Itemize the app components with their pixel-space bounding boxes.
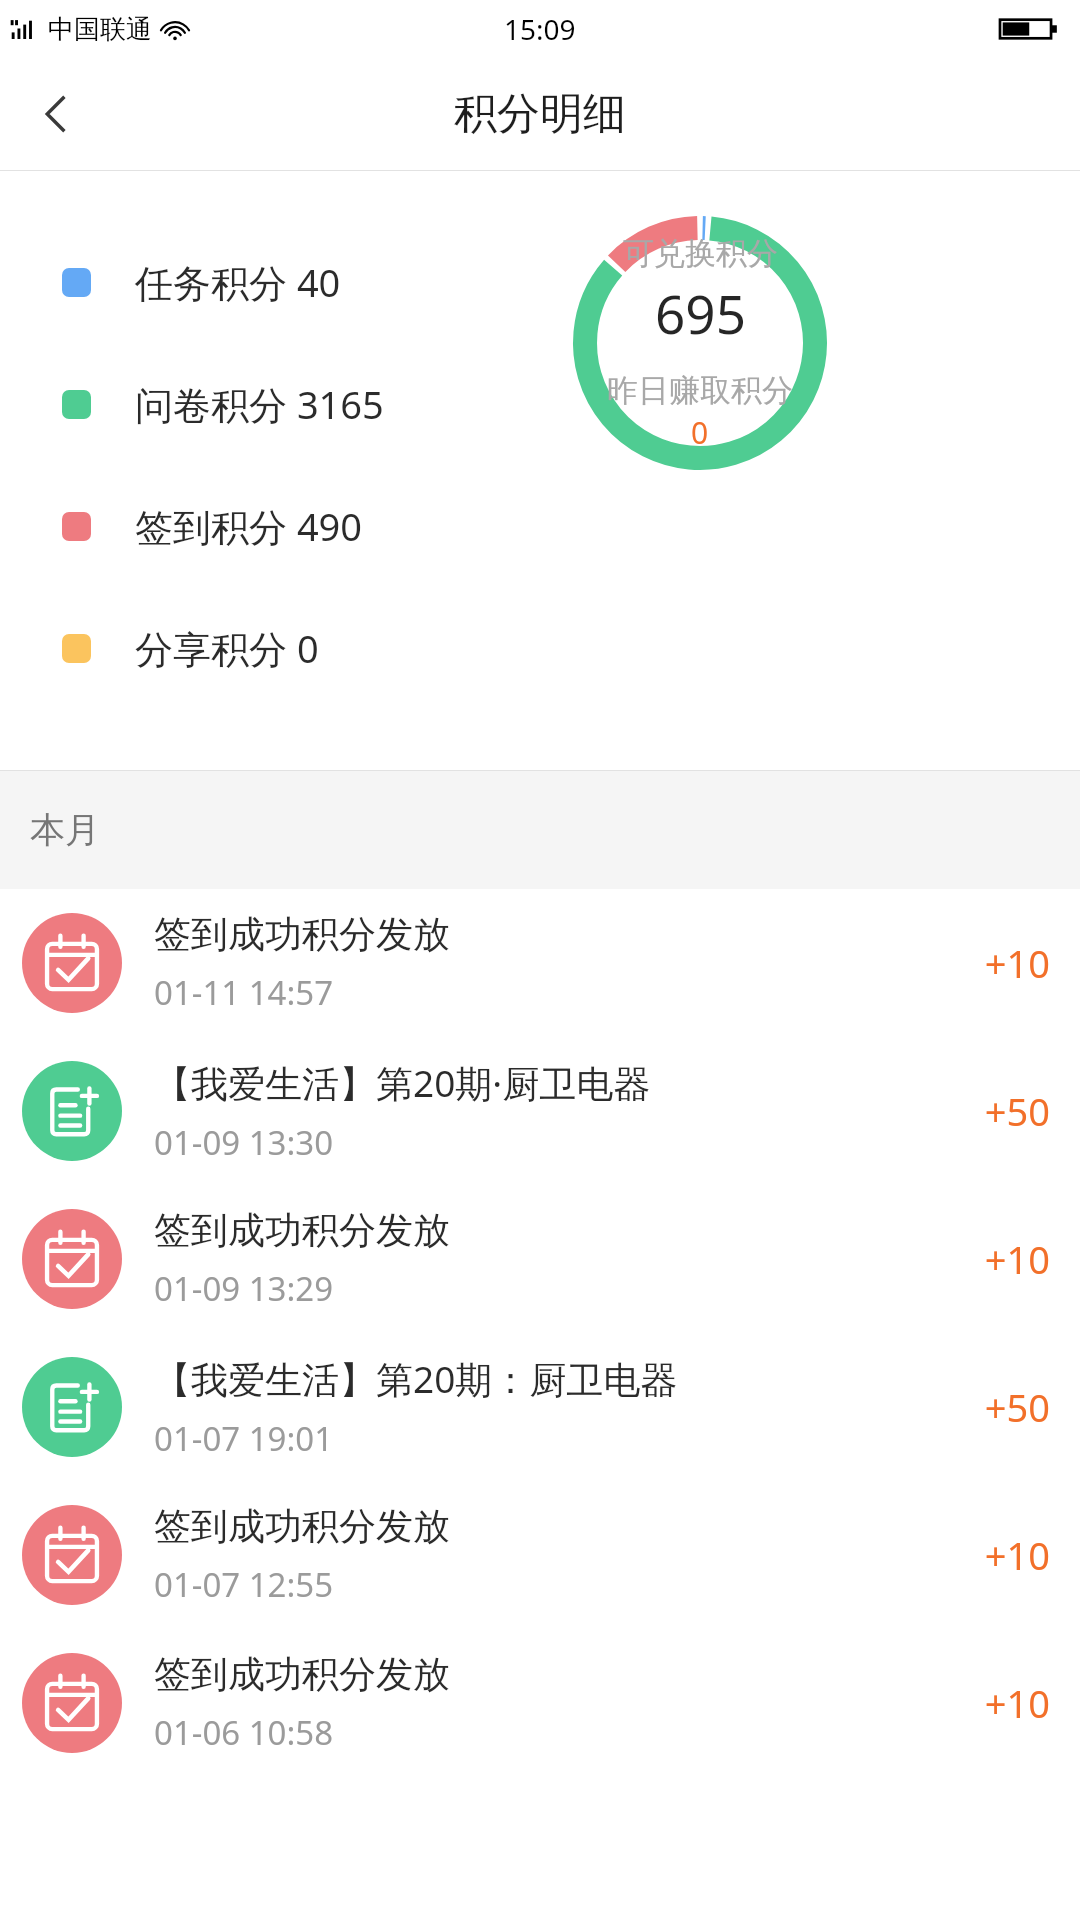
staticText: +50 bbox=[984, 1085, 1050, 1137]
staticText: 01-06 10:58 bbox=[154, 1710, 334, 1755]
staticText: 签到成功积分发放 bbox=[154, 1651, 450, 1698]
staticText: 签到积分 490 bbox=[135, 500, 363, 552]
staticText: 本月 bbox=[30, 808, 100, 852]
staticText: 可兑换积分 bbox=[623, 234, 778, 273]
staticText: 01-09 13:29 bbox=[154, 1266, 334, 1311]
button[interactable]: 签到成功积分发放 bbox=[0, 1629, 1080, 1777]
staticText: +10 bbox=[984, 1677, 1050, 1729]
button[interactable]: 任务积分 40 bbox=[62, 256, 341, 308]
staticText: 01-11 14:57 bbox=[154, 970, 334, 1015]
staticText: 任务积分 40 bbox=[135, 256, 341, 308]
staticText: 01-07 19:01 bbox=[154, 1416, 334, 1461]
staticText: 问卷积分 3165 bbox=[135, 378, 384, 430]
staticText: 签到成功积分发放 bbox=[154, 1207, 450, 1254]
button[interactable]: 签到成功积分发放 bbox=[0, 1481, 1080, 1629]
button[interactable]: 签到成功积分发放 bbox=[0, 1185, 1080, 1333]
staticText: 0 bbox=[691, 412, 709, 453]
button[interactable]: Back bbox=[0, 58, 112, 170]
staticText: 01-07 12:55 bbox=[154, 1562, 334, 1607]
button[interactable]: 【我爱生活】第20期·厨卫电器 bbox=[0, 1037, 1080, 1185]
staticText: 01-09 13:30 bbox=[154, 1120, 334, 1165]
button[interactable]: 【我爱生活】第20期：厨卫电器 bbox=[0, 1333, 1080, 1481]
staticText: 【我爱生活】第20期·厨卫电器 bbox=[154, 1057, 651, 1108]
staticText: 【我爱生活】第20期：厨卫电器 bbox=[154, 1353, 678, 1404]
button[interactable]: 问卷积分 3165 bbox=[62, 378, 384, 430]
staticText: 昨日赚取积分 bbox=[607, 371, 793, 410]
staticText: +10 bbox=[984, 937, 1050, 989]
staticText: 签到成功积分发放 bbox=[154, 911, 450, 958]
staticText: 695 bbox=[655, 277, 746, 349]
staticText: +50 bbox=[984, 1381, 1050, 1433]
staticText: +10 bbox=[984, 1529, 1050, 1581]
staticText: 分享积分 0 bbox=[135, 622, 319, 674]
staticText: 15:09 bbox=[504, 10, 576, 48]
button[interactable]: 分享积分 0 bbox=[62, 622, 319, 674]
button[interactable]: 签到成功积分发放 bbox=[0, 889, 1080, 1037]
staticText: 中国联通 bbox=[48, 13, 152, 46]
staticText: 积分明细 bbox=[454, 87, 626, 141]
button[interactable]: 签到积分 490 bbox=[62, 500, 363, 552]
staticText: 签到成功积分发放 bbox=[154, 1503, 450, 1550]
staticText: +10 bbox=[984, 1233, 1050, 1285]
